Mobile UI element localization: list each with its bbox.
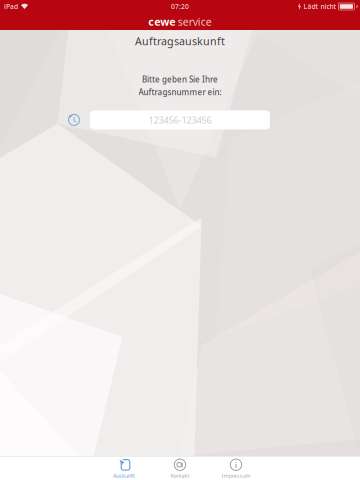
staticText: 123456-123456 [148, 114, 211, 126]
staticText: Impressum [221, 472, 250, 479]
button[interactable]: Kontakt [155, 456, 205, 480]
staticText: Auskunft [113, 472, 135, 479]
staticText: Bitte geben Sie Ihre [142, 74, 218, 85]
staticText: cewe [148, 14, 175, 29]
button[interactable]: Impressum [211, 456, 261, 480]
staticText: Kontakt [170, 472, 189, 479]
staticText: iPad [4, 2, 18, 11]
staticText: service [178, 14, 212, 29]
staticText: Auftragsnummer ein: [138, 87, 221, 97]
staticText: 07:20 [171, 2, 189, 11]
staticText: Auftragsauskunft [135, 34, 225, 48]
button[interactable]: Auskunft [99, 456, 149, 480]
staticText: Lädt nicht [303, 2, 336, 11]
